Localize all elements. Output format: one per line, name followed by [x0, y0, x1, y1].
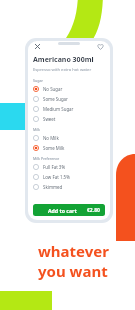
button[interactable]: Close [33, 42, 42, 51]
button[interactable]: Favourite [96, 42, 105, 51]
staticText: Sugar [33, 78, 43, 83]
staticText: Some Sugar [43, 96, 68, 102]
button[interactable]: Full Fat 3% [33, 162, 105, 172]
staticText: No Sugar [43, 86, 63, 92]
staticText: Some Milk [43, 145, 65, 151]
staticText: Full Fat 3% [43, 164, 66, 170]
staticText: Milk [33, 127, 41, 132]
staticText: €2.80 [87, 207, 100, 214]
button[interactable]: No Milk [33, 133, 105, 143]
button[interactable]: Medium Sugar [33, 104, 105, 114]
button[interactable]: Skimmed [33, 182, 105, 192]
button[interactable]: Sweet [33, 114, 105, 124]
staticText: Americano 300ml [33, 55, 94, 65]
staticText: Add to cart [48, 207, 77, 214]
staticText: Medium Sugar [43, 106, 74, 112]
staticText: Milk Preference [33, 156, 60, 161]
button[interactable]: Add to cart [33, 204, 105, 216]
staticText: Low Fat 1.5% [43, 174, 70, 180]
staticText: Skimmed [43, 184, 63, 190]
button[interactable]: No Sugar [33, 84, 105, 94]
staticText: Sweet [43, 116, 56, 122]
staticText: you want [38, 261, 108, 281]
staticText: whatever [38, 241, 109, 261]
button[interactable]: Low Fat 1.5% [33, 172, 105, 182]
button[interactable]: Some Sugar [33, 94, 105, 104]
staticText: No Milk [43, 135, 59, 141]
button[interactable]: Some Milk [33, 143, 105, 153]
staticText: Espresso with extra hot water [33, 67, 92, 73]
